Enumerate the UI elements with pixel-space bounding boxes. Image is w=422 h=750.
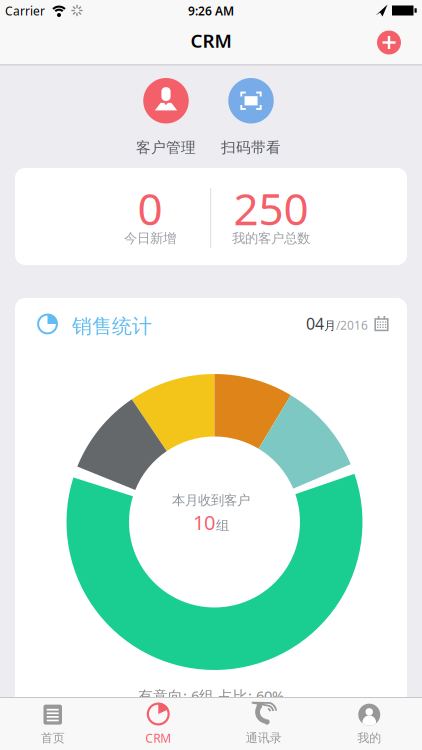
- staticText: CRM: [145, 730, 171, 746]
- staticText: 9:26 AM: [188, 3, 234, 19]
- staticText: 今日新增: [124, 230, 176, 246]
- staticText: 10: [193, 509, 215, 536]
- button[interactable]: 扫码带看: [221, 78, 281, 156]
- button[interactable]: 客户管理: [136, 78, 196, 156]
- staticText: 扫码带看: [221, 138, 281, 156]
- staticText: 250: [233, 179, 308, 237]
- button[interactable]: CRM: [105, 698, 211, 750]
- staticText: CRM: [190, 28, 231, 53]
- staticText: 组: [216, 517, 229, 534]
- staticText: 我的客户总数: [232, 230, 310, 246]
- staticText: 我的: [357, 731, 381, 745]
- button[interactable]: 通讯录: [211, 698, 316, 750]
- button[interactable]: 我的: [316, 698, 422, 750]
- staticText: 客户管理: [136, 138, 196, 156]
- staticText: Carrier: [5, 3, 45, 19]
- button[interactable]: Choose month: [306, 313, 390, 334]
- staticText: 有意向: 6组 占比: 60%: [138, 686, 284, 705]
- staticText: 本月收到客户: [172, 492, 250, 508]
- staticText: 通讯录: [246, 731, 282, 745]
- staticText: 月: [324, 318, 336, 333]
- button[interactable]: 首页: [0, 698, 105, 750]
- staticText: 销售统计: [72, 314, 152, 339]
- staticText: /2016: [336, 317, 368, 333]
- staticText: 0: [137, 179, 162, 237]
- staticText: 首页: [41, 731, 65, 745]
- button[interactable]: Add: [377, 30, 401, 54]
- staticText: 04: [306, 313, 324, 334]
